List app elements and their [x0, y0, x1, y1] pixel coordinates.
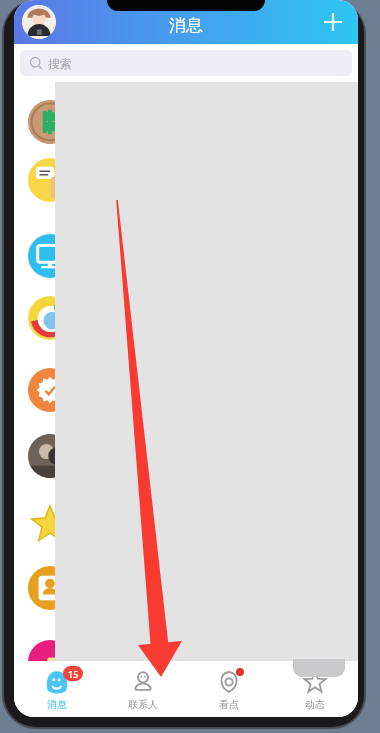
- staticText: 动态: [305, 698, 325, 711]
- button[interactable]: Chat 1: [28, 158, 72, 202]
- button[interactable]: Chat 7: [28, 566, 72, 610]
- staticText: 搜索: [48, 56, 72, 71]
- button[interactable]: Chat 3: [28, 296, 72, 340]
- button[interactable]: 看点: [186, 661, 272, 717]
- staticText: 消息: [47, 698, 67, 711]
- staticText: 看点: [219, 698, 239, 711]
- staticText: 15: [68, 668, 79, 680]
- button[interactable]: 联系人: [100, 661, 186, 717]
- button[interactable]: Chat 8: [28, 640, 72, 684]
- button[interactable]: Add: [316, 5, 350, 39]
- staticText: 联系人: [128, 698, 158, 711]
- button[interactable]: Chat 6: [28, 502, 72, 546]
- button[interactable]: Chat 2: [28, 234, 72, 278]
- button[interactable]: 搜索: [20, 50, 352, 76]
- staticText: 消息: [169, 15, 203, 36]
- button[interactable]: Chat 5: [28, 434, 72, 478]
- button[interactable]: Chat 4: [28, 368, 72, 412]
- button[interactable]: Profile: [22, 5, 56, 39]
- button[interactable]: Chat 0: [28, 100, 72, 144]
- button[interactable]: 15: [14, 661, 100, 717]
- button[interactable]: 动态: [272, 661, 358, 717]
